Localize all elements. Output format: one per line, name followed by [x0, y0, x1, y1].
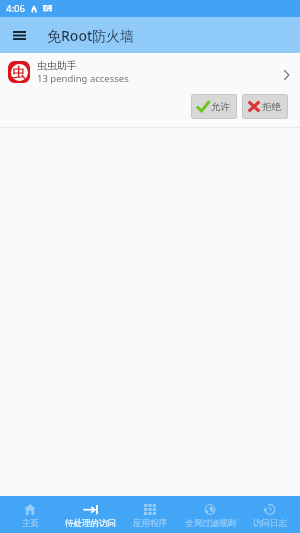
- button[interactable]: 拒绝: [242, 94, 288, 119]
- staticText: 虫虫助手: [37, 59, 77, 72]
- staticText: 访问日志: [253, 518, 287, 529]
- button[interactable]: 虫: [0, 53, 300, 128]
- button[interactable]: 待处理的访问: [60, 496, 120, 533]
- staticText: 13 pending accesses: [37, 72, 129, 85]
- staticText: 拒绝: [262, 101, 281, 113]
- staticText: 待处理的访问: [65, 518, 116, 529]
- staticText: 免Root防火墙: [47, 26, 135, 45]
- button[interactable]: Menu: [0, 17, 38, 53]
- staticText: 全局过滤规则: [185, 518, 236, 529]
- staticText: 虫: [12, 64, 26, 81]
- button[interactable]: 访问日志: [240, 496, 300, 533]
- button[interactable]: 主页: [0, 496, 60, 533]
- staticText: 4:06: [6, 2, 25, 15]
- button[interactable]: 允许: [191, 94, 237, 119]
- button[interactable]: 全局过滤规则: [180, 496, 240, 533]
- staticText: 允许: [211, 101, 230, 113]
- staticText: 主页: [22, 518, 39, 529]
- button[interactable]: 应用程序: [120, 496, 180, 533]
- staticText: 应用程序: [133, 518, 167, 529]
